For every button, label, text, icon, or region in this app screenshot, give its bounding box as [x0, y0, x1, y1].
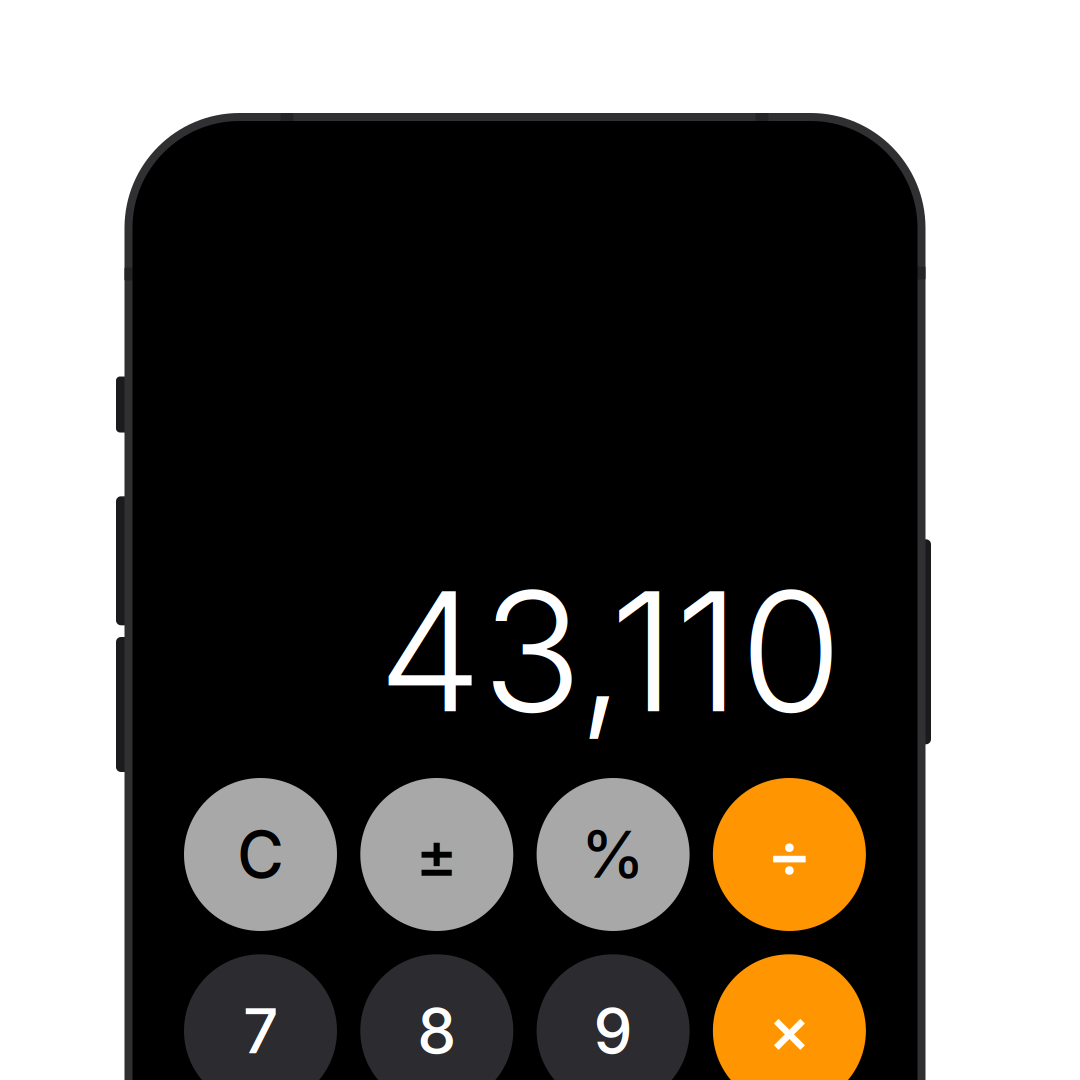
staticText: 43,110 — [378, 551, 842, 751]
button[interactable]: Divide — [713, 778, 866, 931]
staticText: 8 — [417, 993, 456, 1068]
staticText: % — [581, 816, 645, 893]
button[interactable]: Multiply — [713, 954, 866, 1080]
button[interactable]: 9 — [537, 954, 690, 1080]
button[interactable]: 8 — [360, 954, 513, 1080]
button[interactable]: % — [537, 778, 690, 931]
staticText: ± — [415, 816, 458, 893]
staticText: 7 — [243, 993, 278, 1068]
staticText: C — [237, 816, 284, 893]
button[interactable]: 7 — [184, 954, 337, 1080]
button[interactable]: C — [184, 778, 337, 931]
staticText: 9 — [594, 993, 633, 1068]
button[interactable]: ± — [360, 778, 513, 931]
